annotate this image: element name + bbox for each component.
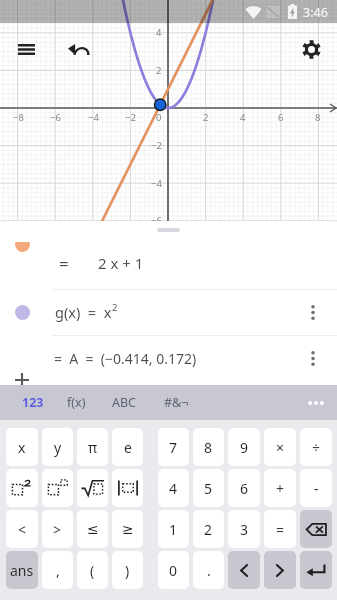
button[interactable]: × [264, 428, 296, 466]
button[interactable]: 2 [193, 510, 224, 548]
button[interactable]: ABC [104, 387, 145, 418]
staticText: . [207, 561, 211, 580]
staticText: 4 [240, 111, 246, 124]
button[interactable]: ≥ [112, 510, 143, 548]
button[interactable]: Absolute value [112, 469, 143, 507]
button[interactable]: Backspace [300, 510, 332, 548]
staticText: 2 x + 1 [98, 253, 144, 273]
button[interactable]: π [77, 428, 108, 466]
button[interactable]: More options [301, 300, 325, 324]
staticText: e [124, 438, 132, 457]
staticText: - [314, 479, 319, 498]
button[interactable]: Undo [60, 31, 97, 68]
staticText: > [53, 520, 62, 539]
button[interactable]: Square [6, 469, 38, 507]
button[interactable]: ÷ [300, 428, 332, 466]
button[interactable]: Menu [8, 31, 45, 68]
button[interactable]: 8 [193, 428, 224, 466]
button[interactable]: - [300, 469, 332, 507]
button[interactable]: < [6, 510, 38, 548]
staticText: 3 [240, 520, 249, 539]
button[interactable]: y [42, 428, 73, 466]
button[interactable]: 9 [228, 428, 260, 466]
staticText: #&¬ [164, 394, 189, 411]
staticText: < [18, 520, 27, 539]
staticText: 123 [22, 394, 44, 411]
staticText: π [88, 438, 98, 457]
button[interactable]: 5 [193, 469, 224, 507]
button[interactable]: ) [112, 551, 143, 589]
staticText: −2 [151, 139, 162, 152]
button[interactable]: ≤ [77, 510, 108, 548]
staticText: −6 [151, 214, 162, 227]
staticText: 4 [169, 479, 178, 498]
staticText: = [276, 520, 285, 539]
staticText: 4 [156, 26, 162, 39]
button[interactable]: 3 [228, 510, 260, 548]
button[interactable]: #&¬ [156, 387, 197, 418]
staticText: −4 [88, 111, 99, 124]
staticText: = [59, 252, 69, 275]
staticText: , [56, 561, 60, 580]
staticText: 0 [156, 111, 162, 124]
button[interactable]: ( [77, 551, 108, 589]
staticText: 6 [240, 479, 249, 498]
button[interactable]: ans [6, 551, 38, 589]
button[interactable]: e [112, 428, 143, 466]
staticText: ÷ [312, 438, 321, 457]
button[interactable]: Power [42, 469, 73, 507]
staticText: 1 [169, 520, 178, 539]
staticText: = A = (−0.414, 0.172) [54, 349, 197, 368]
staticText: 7 [169, 438, 178, 457]
button[interactable]: , [42, 551, 73, 589]
staticText: −6 [50, 111, 61, 124]
button[interactable]: = [0, 242, 337, 289]
button[interactable]: 6 [228, 469, 260, 507]
staticText: 8 [204, 438, 213, 457]
staticText: ABC [112, 394, 137, 411]
staticText: 3:46 [303, 4, 328, 21]
staticText: 6 [278, 111, 284, 124]
staticText: 9 [240, 438, 249, 457]
button[interactable]: 4 [158, 469, 189, 507]
staticText: ) [125, 561, 130, 580]
staticText: 8 [315, 111, 321, 124]
button[interactable]: . [193, 551, 224, 589]
button[interactable]: x [6, 428, 38, 466]
button[interactable]: Add expression [8, 366, 36, 385]
staticText: f(x) [67, 394, 86, 411]
button[interactable]: Enter [300, 551, 332, 589]
button[interactable]: Settings [293, 31, 330, 68]
staticText: ≥ [122, 521, 134, 537]
button[interactable]: > [42, 510, 73, 548]
staticText: g(x) = x [55, 302, 112, 322]
staticText: 2 [203, 111, 209, 124]
staticText: −2 [125, 111, 136, 124]
button[interactable]: Square root [77, 469, 108, 507]
button[interactable]: More keyboard options [301, 388, 331, 418]
staticText: × [276, 438, 285, 457]
button[interactable]: g(x) = x [0, 289, 337, 335]
button[interactable]: = [264, 510, 296, 548]
button[interactable]: 1 [158, 510, 189, 548]
button[interactable]: 0 [158, 551, 189, 589]
staticText: 2 [112, 301, 118, 314]
button[interactable]: 7 [158, 428, 189, 466]
button[interactable]: 123 [14, 387, 52, 418]
staticText: ( [90, 561, 95, 580]
button[interactable]: f(x) [59, 387, 94, 418]
staticText: + [276, 479, 285, 498]
button[interactable]: Move right [264, 551, 296, 589]
button[interactable]: Move left [228, 551, 260, 589]
staticText: 5 [204, 479, 213, 498]
button[interactable]: + [264, 469, 296, 507]
staticText: ans [10, 561, 34, 580]
staticText: ≤ [87, 521, 99, 537]
button[interactable]: More options [301, 346, 325, 370]
staticText: 0 [169, 561, 178, 580]
staticText: −8 [13, 111, 24, 124]
button[interactable]: = A = (−0.414, 0.172) [0, 335, 337, 381]
staticText: −4 [151, 177, 162, 190]
staticText: 2 [204, 520, 213, 539]
staticText: x [18, 438, 26, 457]
